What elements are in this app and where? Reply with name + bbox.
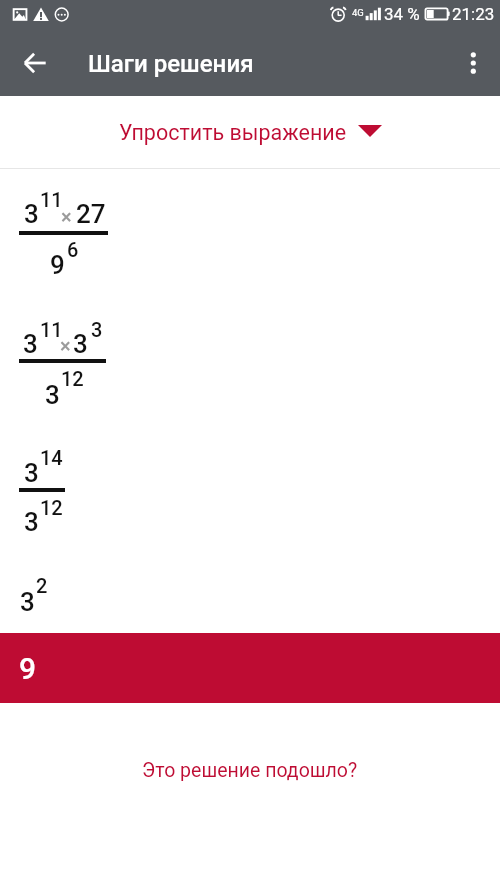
staticText: 11 xyxy=(40,188,63,211)
staticText: 14 xyxy=(40,446,63,469)
staticText: × xyxy=(60,334,71,357)
button[interactable]: 9 xyxy=(0,633,500,703)
button[interactable]: Это решение подошло? xyxy=(142,759,358,782)
staticText: 12 xyxy=(61,367,84,390)
staticText: 3 xyxy=(73,329,88,359)
staticText: 11 xyxy=(40,318,63,341)
button[interactable]: Back xyxy=(12,41,56,85)
staticText: 3 xyxy=(23,329,38,359)
staticText: 3 xyxy=(24,458,39,488)
staticText: 9 xyxy=(19,651,37,686)
staticText: Шаги решения xyxy=(88,50,254,78)
staticText: 3 xyxy=(91,318,103,341)
staticText: 6 xyxy=(67,238,79,261)
staticText: × xyxy=(61,205,72,228)
button[interactable]: More options xyxy=(449,41,493,85)
button[interactable]: Упростить выражение xyxy=(119,120,382,145)
staticText: 9 xyxy=(50,250,65,280)
staticText: 2 xyxy=(36,574,48,597)
staticText: Упростить выражение xyxy=(119,120,347,145)
staticText: 3 xyxy=(24,507,39,537)
staticText: 3 xyxy=(20,587,35,617)
staticText: 3 xyxy=(45,380,60,410)
staticText: 21:23 xyxy=(452,4,495,24)
staticText: 12 xyxy=(40,496,63,519)
staticText: 3 xyxy=(24,199,39,229)
staticText: 34 % xyxy=(384,4,420,24)
staticText: 27 xyxy=(76,199,106,229)
staticText: 4G xyxy=(352,7,364,18)
